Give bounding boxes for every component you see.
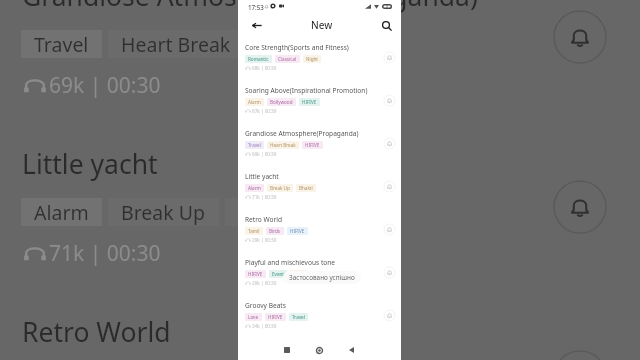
staticText: Birds [269,228,281,234]
staticText: Retro World [22,314,171,350]
staticText: Little yacht [245,172,279,181]
button[interactable]: Recents [279,342,295,358]
staticText: HIFIVE [263,31,324,58]
staticText: Night [306,56,318,62]
staticText: HIFIVE [248,271,263,277]
button[interactable]: Notify [382,50,396,64]
button[interactable]: Back [246,17,263,34]
staticText: HIFIVE [302,99,317,105]
staticText: HIFIVE [305,142,320,148]
staticText: Alarm [248,185,261,191]
button[interactable]: Notify [382,265,396,279]
staticText: Break Up [270,185,290,191]
staticText: Soaring Above(Inspirational Promotion) [245,86,368,95]
staticText: Alarm [248,99,261,105]
button[interactable]: Soaring Above(Inspirational Promotion) [238,78,401,121]
button[interactable]: Little yacht [238,164,401,207]
staticText: 71k | 00:30 [49,239,161,268]
button[interactable]: Back [343,342,359,358]
staticText: Playful and mischievous tone [245,258,336,267]
staticText: Grandiose Atmosphere(Propaganda) [245,129,359,138]
button[interactable]: Core Strength(Sports and Fitness) [238,35,401,78]
staticText: 69k | 00:30 [252,151,277,157]
staticText: Heart Break [121,31,231,58]
button[interactable]: Notify [382,222,396,236]
staticText: 20k | 00:30 [252,280,277,286]
staticText: Groovy Beats [245,301,286,310]
staticText: 17:53 [248,3,264,11]
staticText: Alarm [34,199,89,226]
staticText: Travel [248,142,261,148]
staticText: New [311,18,333,32]
staticText: Classical [278,56,297,62]
staticText: 68k | 00:30 [252,65,277,71]
staticText: Travel [34,31,89,58]
staticText: HIFIVE [290,228,305,234]
staticText: Grandiose Atmosphere(Propaganda) [22,0,478,14]
staticText: Bhakti [299,185,313,191]
staticText: Little yacht [22,146,158,182]
staticText: 29k | 00:30 [252,237,277,243]
button[interactable]: Grandiose Atmosphere(Propaganda) [238,121,401,164]
staticText: Bhakti [238,199,297,226]
button[interactable]: Groovy Beats [238,293,401,336]
staticText: Love [248,314,259,320]
staticText: 69k | 00:30 [49,71,161,100]
staticText: 34k | 00:30 [252,323,277,329]
button[interactable]: Home [311,342,327,358]
staticText: Retro World [245,215,282,224]
staticText: Break Up [121,199,206,226]
staticText: Love [293,271,304,277]
button[interactable]: Notify [382,136,396,150]
staticText: Tamil [248,228,260,234]
button[interactable]: Notify [382,179,396,193]
staticText: HIFIVE [268,314,283,320]
button[interactable]: Retro World [238,207,401,250]
staticText: Travel [292,314,305,320]
staticText: Core Strength(Sports and Fitness) [245,43,349,52]
staticText: Застосовано успішно [289,273,355,282]
staticText: Bollywood [270,99,293,105]
staticText: Event [272,271,284,277]
staticText: 71k | 00:30 [252,194,277,200]
button[interactable]: Notify [382,308,396,322]
staticText: Heart Break [270,142,296,148]
button[interactable]: Playful and mischievous tone [238,250,401,293]
staticText: Romantic [248,56,269,62]
button[interactable]: Notify [382,93,396,107]
staticText: 67k | 00:30 [252,108,277,114]
button[interactable]: Search [378,17,395,34]
